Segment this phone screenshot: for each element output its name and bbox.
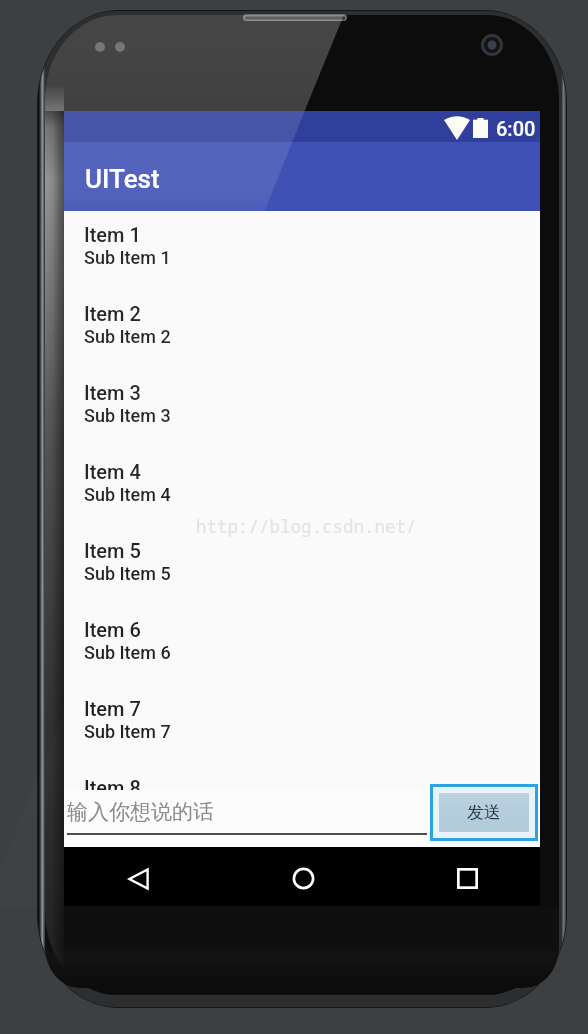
button[interactable]: Item 2 [64, 290, 540, 369]
button[interactable]: 发送 [439, 793, 529, 832]
staticText: Item 7 [84, 697, 141, 720]
staticText: UITest [85, 164, 160, 194]
staticText: Sub Item 7 [84, 721, 171, 742]
button[interactable]: Item 8 [64, 764, 540, 790]
staticText: Sub Item 2 [84, 326, 171, 347]
button[interactable]: Back [108, 849, 168, 908]
staticText: Item 6 [84, 618, 141, 641]
button[interactable]: Item 3 [64, 369, 540, 448]
staticText: Sub Item 3 [84, 405, 171, 426]
button[interactable]: Item 7 [64, 685, 540, 764]
staticText: Item 4 [84, 460, 141, 483]
staticText: 发送 [467, 802, 501, 823]
button[interactable]: Recent apps [437, 849, 497, 908]
button[interactable]: Home [273, 849, 333, 908]
button[interactable]: Item 4 [64, 448, 540, 527]
staticText: Item 2 [84, 302, 141, 325]
staticText: 6:00 [496, 117, 536, 140]
staticText: Item 3 [84, 381, 141, 404]
staticText: http://blog.csdn.net/ [196, 514, 417, 538]
staticText: Item 1 [84, 223, 141, 246]
staticText: Sub Item 5 [84, 563, 171, 584]
staticText: Sub Item 1 [84, 247, 171, 268]
staticText: Sub Item 8 [84, 800, 171, 821]
button[interactable]: Item 5 [64, 527, 540, 606]
staticText: Sub Item 6 [84, 642, 171, 663]
button[interactable]: Item 6 [64, 606, 540, 685]
staticText: Sub Item 4 [84, 484, 171, 505]
staticText: Item 8 [84, 776, 141, 799]
staticText: Item 5 [84, 539, 141, 562]
staticText: 输入你想说的话 [67, 799, 214, 825]
button[interactable]: Item 1 [64, 211, 540, 290]
